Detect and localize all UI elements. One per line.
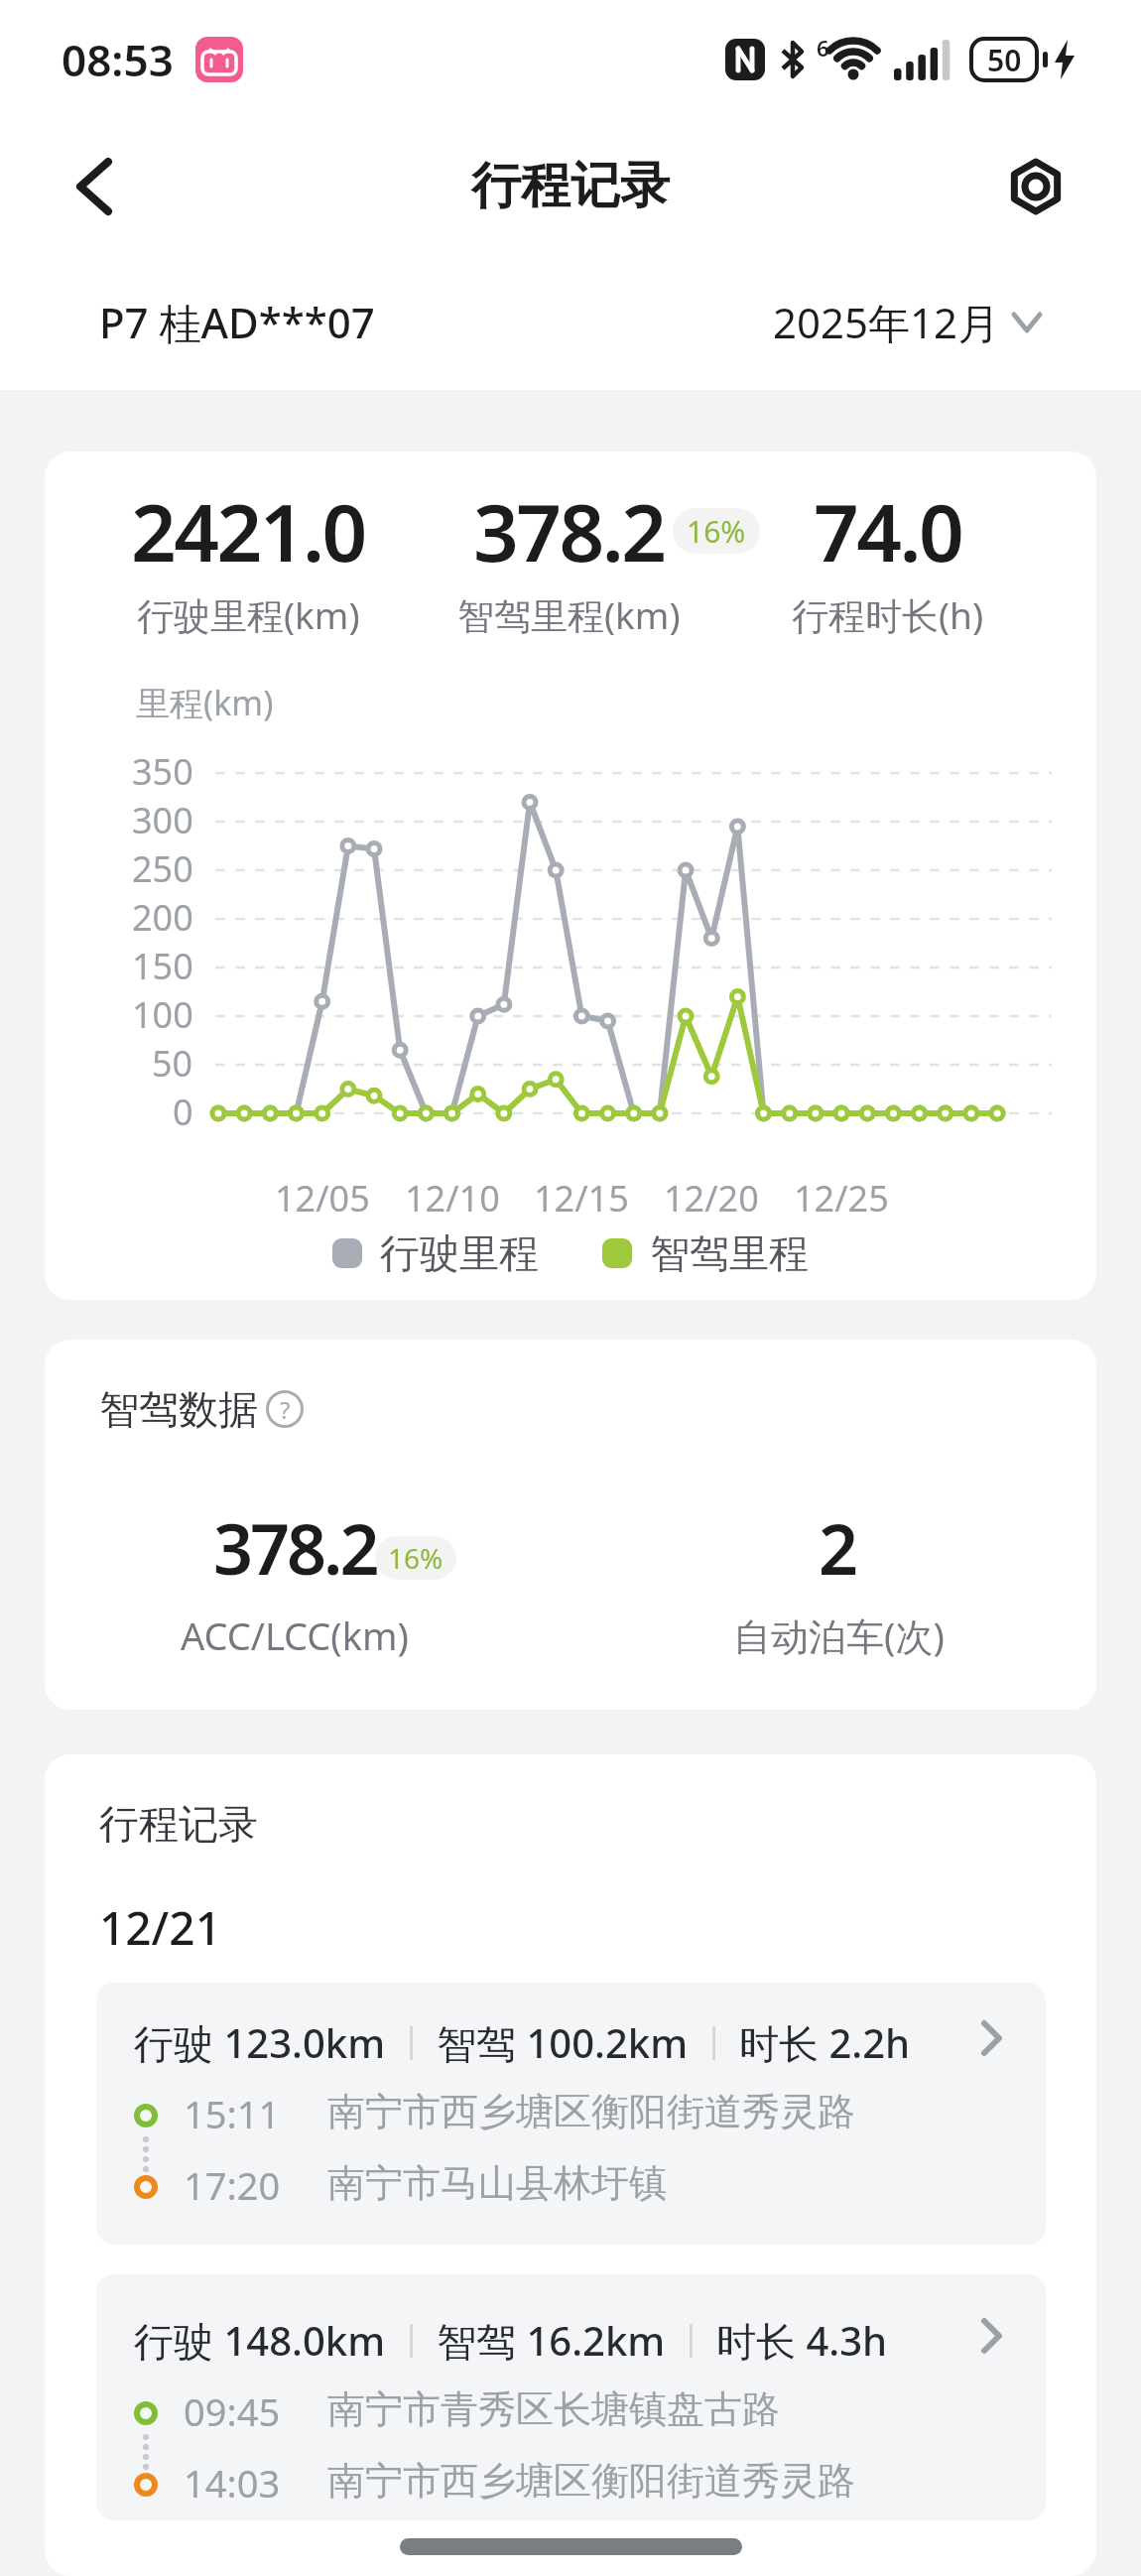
staticText: 200	[132, 893, 193, 942]
staticText: 时长 2.2h	[739, 2015, 911, 2070]
staticText: 时长 4.3h	[716, 2313, 888, 2368]
button[interactable]	[60, 152, 129, 221]
staticText: ?	[280, 1393, 291, 1426]
staticText: P7 桂AD***07	[99, 294, 375, 350]
staticText: 行驶里程(km)	[137, 589, 360, 640]
staticText: 2421.0	[131, 476, 365, 584]
staticText: 行程记录	[99, 1799, 258, 1849]
staticText: 300	[132, 796, 193, 844]
staticText: 100	[132, 990, 193, 1039]
staticText: 智驾里程(km)	[457, 589, 681, 640]
staticText: 12/05	[275, 1174, 370, 1223]
staticText: 350	[132, 747, 193, 796]
button[interactable]: 2025年12月	[773, 294, 1042, 350]
staticText: 12/15	[534, 1174, 629, 1223]
staticText: 智驾 16.2km	[437, 2313, 666, 2368]
staticText: 行程时长(h)	[792, 589, 984, 640]
staticText: 行驶 148.0km	[134, 2313, 386, 2368]
staticText: 行程记录	[471, 155, 670, 217]
staticText: 250	[132, 844, 193, 893]
button[interactable]: 行驶 123.0km	[96, 1983, 1046, 2245]
staticText: 50	[987, 40, 1022, 80]
staticText: 行驶里程	[380, 1228, 539, 1278]
staticText: 2	[819, 1500, 859, 1595]
staticText: 17:20	[184, 2159, 281, 2211]
staticText: 12/21	[99, 1896, 221, 1959]
staticText: 南宁市西乡塘区衡阳街道秀灵路	[327, 2088, 855, 2135]
staticText: 行驶 123.0km	[134, 2015, 386, 2070]
button[interactable]: 行驶 148.0km	[96, 2274, 1046, 2520]
staticText: 378.2	[213, 1500, 377, 1595]
staticText: 378.2	[473, 476, 665, 584]
staticText: 12/25	[794, 1174, 889, 1223]
staticText: 南宁市西乡塘区衡阳街道秀灵路	[327, 2457, 855, 2505]
staticText: 12/10	[405, 1174, 500, 1223]
staticText: 智驾里程	[650, 1228, 809, 1278]
staticText: 南宁市马山县林圩镇	[327, 2159, 667, 2207]
staticText: 自动泊车(次)	[733, 1610, 945, 1661]
staticText: 6	[817, 33, 829, 63]
staticText: 50	[152, 1039, 193, 1088]
staticText: 南宁市青秀区长塘镇盘古路	[327, 2385, 780, 2433]
staticText: 16%	[388, 1539, 444, 1577]
staticText: 0	[173, 1088, 193, 1136]
staticText: 150	[132, 942, 193, 990]
staticText: 16%	[687, 511, 746, 552]
staticText: 09:45	[184, 2385, 281, 2437]
staticText: 里程(km)	[136, 680, 274, 725]
staticText: 74.0	[814, 476, 962, 584]
staticText: 14:03	[184, 2457, 281, 2509]
staticText: 智驾数据	[99, 1384, 258, 1434]
staticText: 12/20	[664, 1174, 759, 1223]
staticText: 智驾 100.2km	[437, 2015, 689, 2070]
staticText: 08:53	[62, 30, 174, 89]
staticText: 15:11	[184, 2088, 281, 2139]
staticText: 2025年12月	[773, 294, 1000, 350]
staticText: ACC/LCC(km)	[181, 1610, 409, 1661]
button[interactable]: ?	[266, 1390, 304, 1428]
button[interactable]	[1000, 151, 1072, 222]
